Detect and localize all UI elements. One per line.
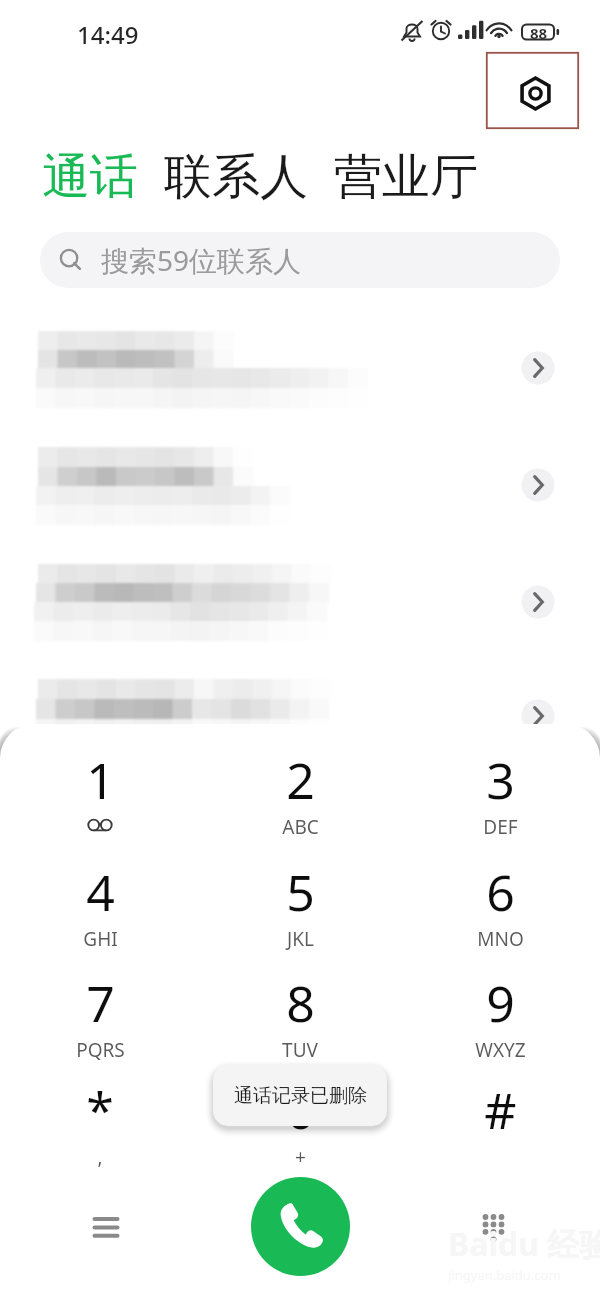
button[interactable]: 4 — [40, 858, 160, 958]
staticText: 搜索59位联系人 — [101, 241, 302, 279]
staticText: 通话 — [42, 147, 138, 207]
staticText: + — [295, 1144, 306, 1170]
staticText: 0 — [286, 1076, 315, 1144]
staticText: 1 — [86, 746, 115, 814]
staticText: 9 — [486, 969, 515, 1037]
staticText: DEF — [483, 814, 518, 840]
button[interactable]: 0 — [240, 1076, 360, 1176]
button[interactable]: 6 — [440, 858, 560, 958]
button[interactable]: Expand contact 4 — [516, 694, 560, 738]
button[interactable]: Expand contact 2 — [516, 463, 560, 507]
staticText: 4 — [86, 858, 115, 926]
staticText: WXYZ — [475, 1037, 526, 1063]
staticText: PQRS — [76, 1037, 125, 1063]
staticText: 5 — [286, 858, 315, 926]
staticText: Baidu 经验 — [448, 1222, 600, 1266]
staticText: 联系人 — [164, 147, 308, 207]
button[interactable]: 营业厅 — [334, 147, 478, 207]
staticText: 营业厅 — [334, 147, 478, 207]
staticText: # — [484, 1076, 517, 1144]
button[interactable]: 通话 — [42, 147, 138, 207]
staticText: 2 — [286, 746, 315, 814]
button[interactable]: 5 — [240, 858, 360, 958]
staticText: 通话记录已删除 — [234, 1084, 367, 1108]
button[interactable]: 8 — [240, 969, 360, 1069]
button[interactable]: 2 — [240, 746, 360, 846]
button[interactable]: Expand contact 3 — [516, 580, 560, 624]
button[interactable]: Menu — [70, 1195, 130, 1255]
button[interactable]: 联系人 — [164, 147, 308, 207]
staticText: 88 — [530, 23, 548, 43]
button[interactable]: * — [40, 1076, 160, 1176]
staticText: 14:49 — [77, 18, 139, 51]
staticText: * — [86, 1076, 114, 1144]
staticText: 8 — [286, 969, 315, 1037]
staticText: 6 — [486, 858, 515, 926]
button[interactable]: 1 — [40, 746, 160, 846]
button[interactable]: Expand contact 1 — [516, 346, 560, 390]
button[interactable]: 搜索59位联系人 — [40, 232, 560, 288]
staticText: ABC — [282, 814, 319, 840]
staticText: , — [97, 1144, 103, 1170]
button[interactable]: 7 — [40, 969, 160, 1069]
button[interactable]: 3 — [440, 746, 560, 846]
button[interactable]: Call — [251, 1177, 350, 1276]
staticText: JKL — [287, 926, 314, 952]
staticText: TUV — [282, 1037, 318, 1063]
button[interactable]: 9 — [440, 969, 560, 1069]
staticText: 3 — [486, 746, 515, 814]
staticText: 7 — [86, 969, 115, 1037]
staticText: GHI — [83, 926, 118, 952]
button[interactable]: # — [440, 1076, 560, 1176]
button[interactable]: Dialpad — [470, 1195, 530, 1255]
staticText: MNO — [477, 926, 524, 952]
button[interactable]: Settings — [486, 52, 579, 129]
